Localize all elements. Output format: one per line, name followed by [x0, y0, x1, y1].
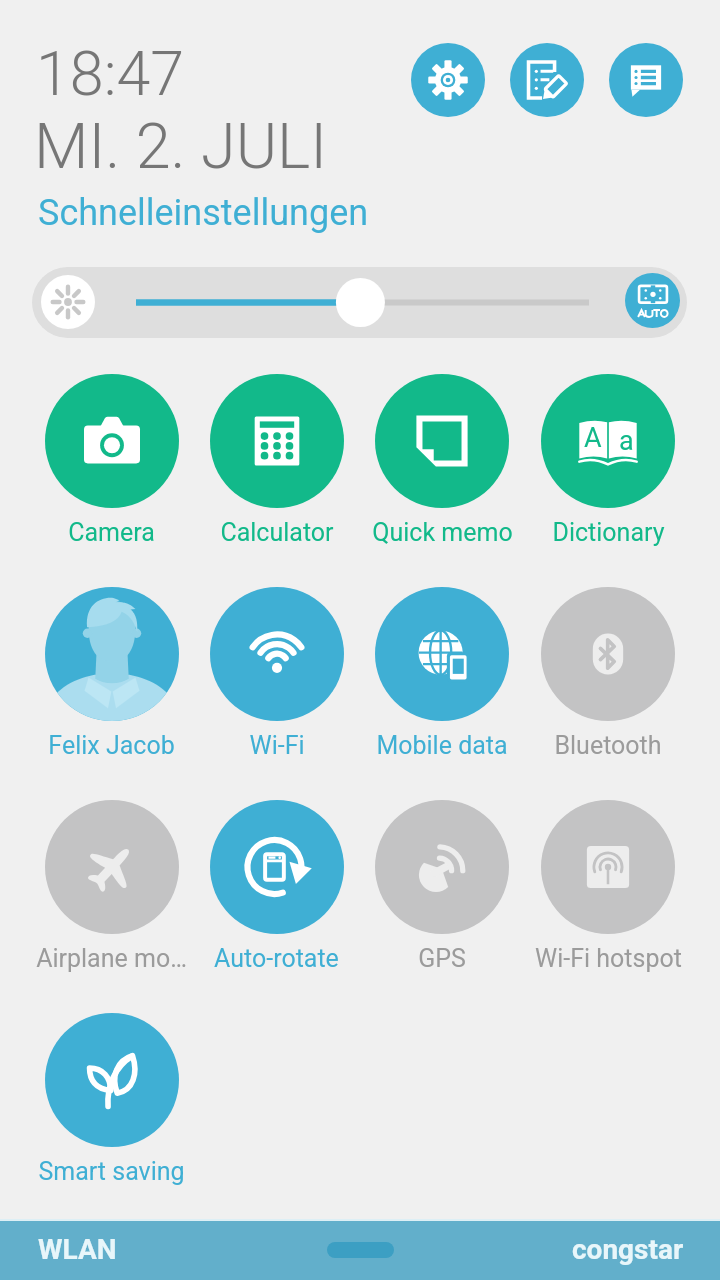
staticText: a — [619, 425, 634, 457]
staticText: Quick memo — [372, 518, 513, 547]
button[interactable]: Bluetooth — [525, 587, 691, 760]
button[interactable]: Settings — [411, 43, 485, 117]
button[interactable]: Airplane mo… — [29, 800, 194, 973]
button[interactable]: Collapse panel — [327, 1242, 394, 1258]
staticText: Calculator — [220, 518, 334, 547]
staticText: Schnelleinstellungen — [38, 192, 369, 234]
button[interactable]: Camera — [29, 374, 194, 547]
button[interactable]: Edit notes — [510, 43, 584, 117]
button[interactable]: Auto-rotate — [194, 800, 359, 973]
staticText: congstar — [572, 1233, 684, 1266]
staticText: 18:47 — [36, 38, 185, 109]
button[interactable]: Wi-Fi — [194, 587, 359, 760]
staticText: Bluetooth — [554, 731, 662, 760]
button[interactable]: Notifications — [609, 43, 683, 117]
staticText: A — [584, 422, 602, 454]
button[interactable]: GPS — [359, 800, 525, 973]
staticText: MI. 2. JULI — [34, 110, 328, 184]
staticText: Smart saving — [38, 1157, 185, 1186]
staticText: Airplane mo… — [36, 944, 187, 973]
staticText: Dictionary — [552, 518, 665, 547]
staticText: GPS — [418, 944, 466, 973]
staticText: WLAN — [38, 1233, 117, 1266]
button[interactable]: Auto brightness — [625, 273, 680, 328]
button[interactable]: Quick memo — [359, 374, 525, 547]
button[interactable]: Smart saving — [29, 1013, 194, 1186]
button[interactable]: Felix Jacob — [29, 587, 194, 760]
staticText: Camera — [68, 518, 155, 547]
staticText: Auto-rotate — [214, 944, 339, 973]
button[interactable]: A — [525, 374, 691, 547]
staticText: Felix Jacob — [48, 731, 175, 760]
button[interactable]: Calculator — [194, 374, 359, 547]
button[interactable]: Auto brightness — [32, 267, 687, 338]
staticText: Wi-Fi hotspot — [535, 944, 682, 973]
button[interactable]: Mobile data — [359, 587, 525, 760]
staticText: Mobile data — [376, 731, 508, 760]
staticText: Wi-Fi — [249, 731, 305, 760]
button[interactable]: Wi-Fi hotspot — [525, 800, 691, 973]
